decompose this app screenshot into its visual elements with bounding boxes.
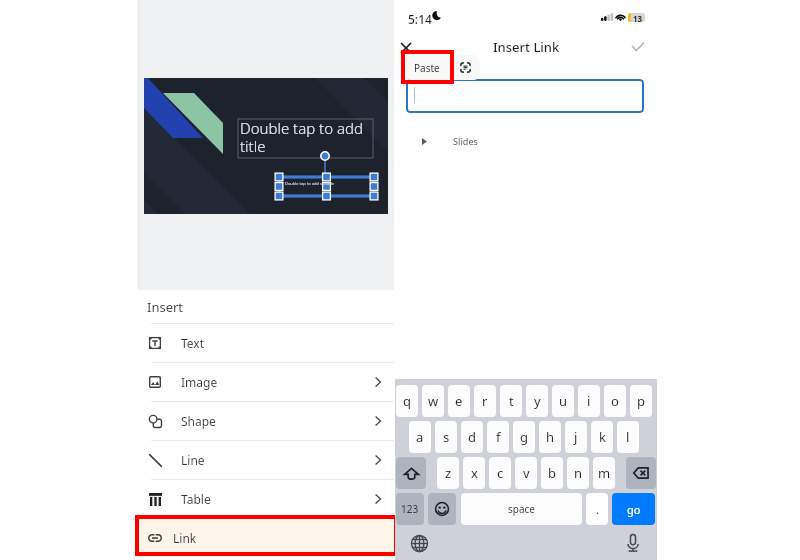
button[interactable]: f [487,421,509,453]
staticText: Shape [181,413,216,429]
button[interactable]: u [552,385,574,417]
button[interactable]: r [474,385,496,417]
button[interactable]: d [461,421,483,453]
button[interactable]: Table [137,480,394,518]
button[interactable]: x [463,457,485,489]
staticText: Slides [453,135,478,147]
button[interactable]: Line [137,441,394,479]
button[interactable]: o [604,385,626,417]
button[interactable]: Image [137,363,394,401]
staticText: Image [181,374,218,390]
button[interactable]: l [617,421,639,453]
staticText: Text [181,335,205,351]
staticText: v [523,464,530,482]
button[interactable]: i [578,385,600,417]
staticText: space [508,502,535,516]
button[interactable]: Shape [137,402,394,440]
staticText: d [468,428,476,446]
staticText: Double tap to add title [240,118,363,157]
button[interactable]: Emoji [428,493,456,525]
staticText: s [443,428,450,446]
button[interactable]: Paste [404,55,450,80]
button[interactable]: h [539,421,561,453]
button[interactable]: z [437,457,459,489]
button[interactable]: . [586,493,608,525]
button[interactable]: Done [627,35,649,57]
button[interactable]: space [461,493,582,525]
button[interactable]: Shift [396,457,426,489]
staticText: q [403,392,411,410]
staticText: Line [181,452,205,468]
button[interactable]: y [526,385,548,417]
button[interactable]: g [513,421,535,453]
button[interactable]: Backspace [626,457,656,489]
button[interactable]: s [435,421,457,453]
staticText: r [482,392,488,410]
staticText: f [496,428,501,446]
staticText: m [598,464,611,482]
button[interactable]: n [567,457,589,489]
button[interactable]: Slides [395,131,657,151]
button[interactable]: e [448,385,470,417]
staticText: z [445,464,452,482]
staticText: g [520,428,528,446]
staticText: 13 [633,13,643,22]
button[interactable]: Dictate [623,533,643,553]
staticText: 5:14 [408,11,432,27]
staticText: Insert Link [493,38,560,56]
staticText: x [471,464,478,482]
staticText: Insert [147,298,184,316]
staticText: u [559,392,568,410]
staticText: b [548,464,556,482]
button[interactable]: go [612,493,655,525]
button[interactable]: k [591,421,613,453]
staticText: c [497,464,504,482]
staticText: a [416,428,424,446]
button[interactable]: 123 [396,493,424,525]
staticText: Table [181,491,211,507]
staticText: t [509,392,514,410]
button[interactable]: t [500,385,522,417]
button[interactable]: c [489,457,511,489]
staticText: Paste [414,61,440,75]
staticText: h [546,428,555,446]
staticText: j [574,428,578,446]
staticText: e [455,392,463,410]
staticText: . [596,502,599,517]
staticText: k [599,428,606,446]
staticText: 123 [401,502,419,516]
staticText: i [587,392,591,410]
button[interactable]: j [565,421,587,453]
staticText: go [627,502,641,517]
staticText: n [574,464,583,482]
button[interactable]: Text [137,324,394,362]
button[interactable]: m [593,457,615,489]
button[interactable]: Link [137,519,394,557]
staticText: p [637,392,645,410]
button[interactable]: a [409,421,431,453]
staticText: y [534,392,541,410]
button[interactable]: Change keyboard [409,533,429,553]
staticText: Link [173,530,197,546]
button[interactable]: p [630,385,652,417]
button[interactable]: v [515,457,537,489]
staticText: o [611,392,619,410]
staticText: l [626,428,630,446]
button[interactable]: Scan text [450,55,480,80]
button[interactable]: b [541,457,563,489]
staticText: w [428,392,439,410]
button[interactable]: w [422,385,444,417]
button[interactable]: Close [395,37,417,59]
staticText: Double tap to add subtitle [285,181,334,186]
button[interactable]: q [396,385,418,417]
button[interactable] [406,79,644,113]
